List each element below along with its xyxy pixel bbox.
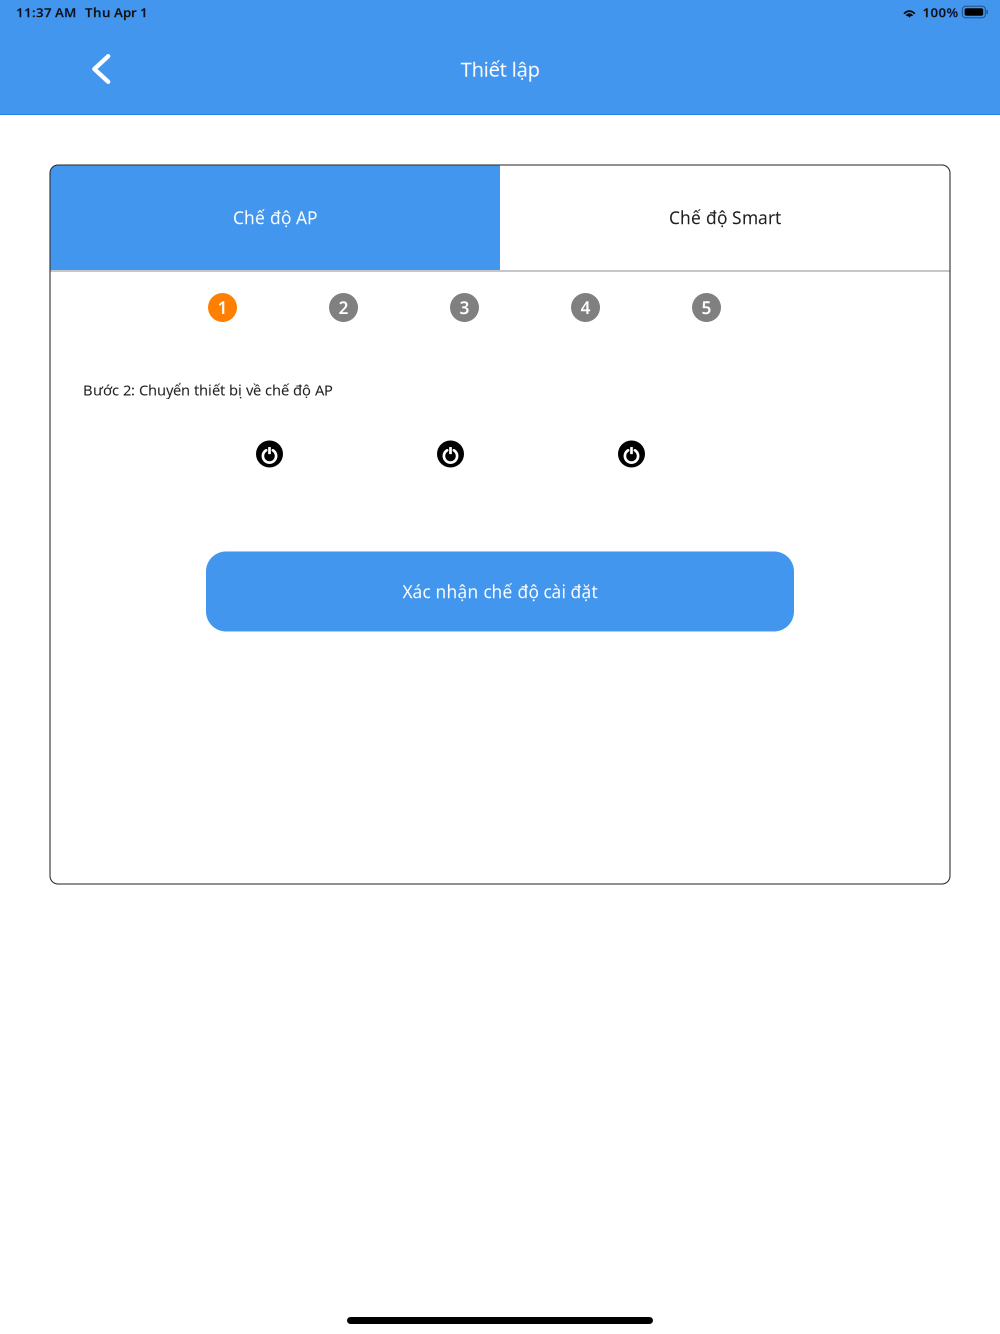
staticText: 11:37 AM: [16, 3, 76, 21]
button[interactable]: 3: [450, 293, 479, 322]
staticText: Chế độ Smart: [669, 206, 781, 229]
staticText: Bước 2: Chuyển thiết bị về chế độ AP: [83, 380, 333, 399]
staticText: 3: [459, 296, 469, 319]
button[interactable]: Xác nhận chế độ cài đặt: [206, 551, 794, 631]
staticText: 1: [217, 296, 227, 319]
button[interactable]: 2: [329, 293, 358, 322]
button[interactable]: Back: [0, 36, 134, 102]
staticText: 2: [338, 296, 348, 319]
button[interactable]: 5: [692, 293, 721, 322]
staticText: 4: [580, 296, 590, 319]
button[interactable]: 1: [208, 293, 237, 322]
staticText: Thu Apr 1: [85, 3, 148, 21]
button[interactable]: Chế độ AP: [50, 165, 500, 270]
staticText: Chế độ AP: [233, 206, 317, 229]
button[interactable]: Chế độ Smart: [500, 165, 950, 270]
staticText: 100%: [922, 3, 958, 21]
button[interactable]: 4: [571, 293, 600, 322]
staticText: Xác nhận chế độ cài đặt: [402, 580, 597, 603]
staticText: Thiết lập: [460, 56, 539, 82]
staticText: 5: [701, 296, 711, 319]
